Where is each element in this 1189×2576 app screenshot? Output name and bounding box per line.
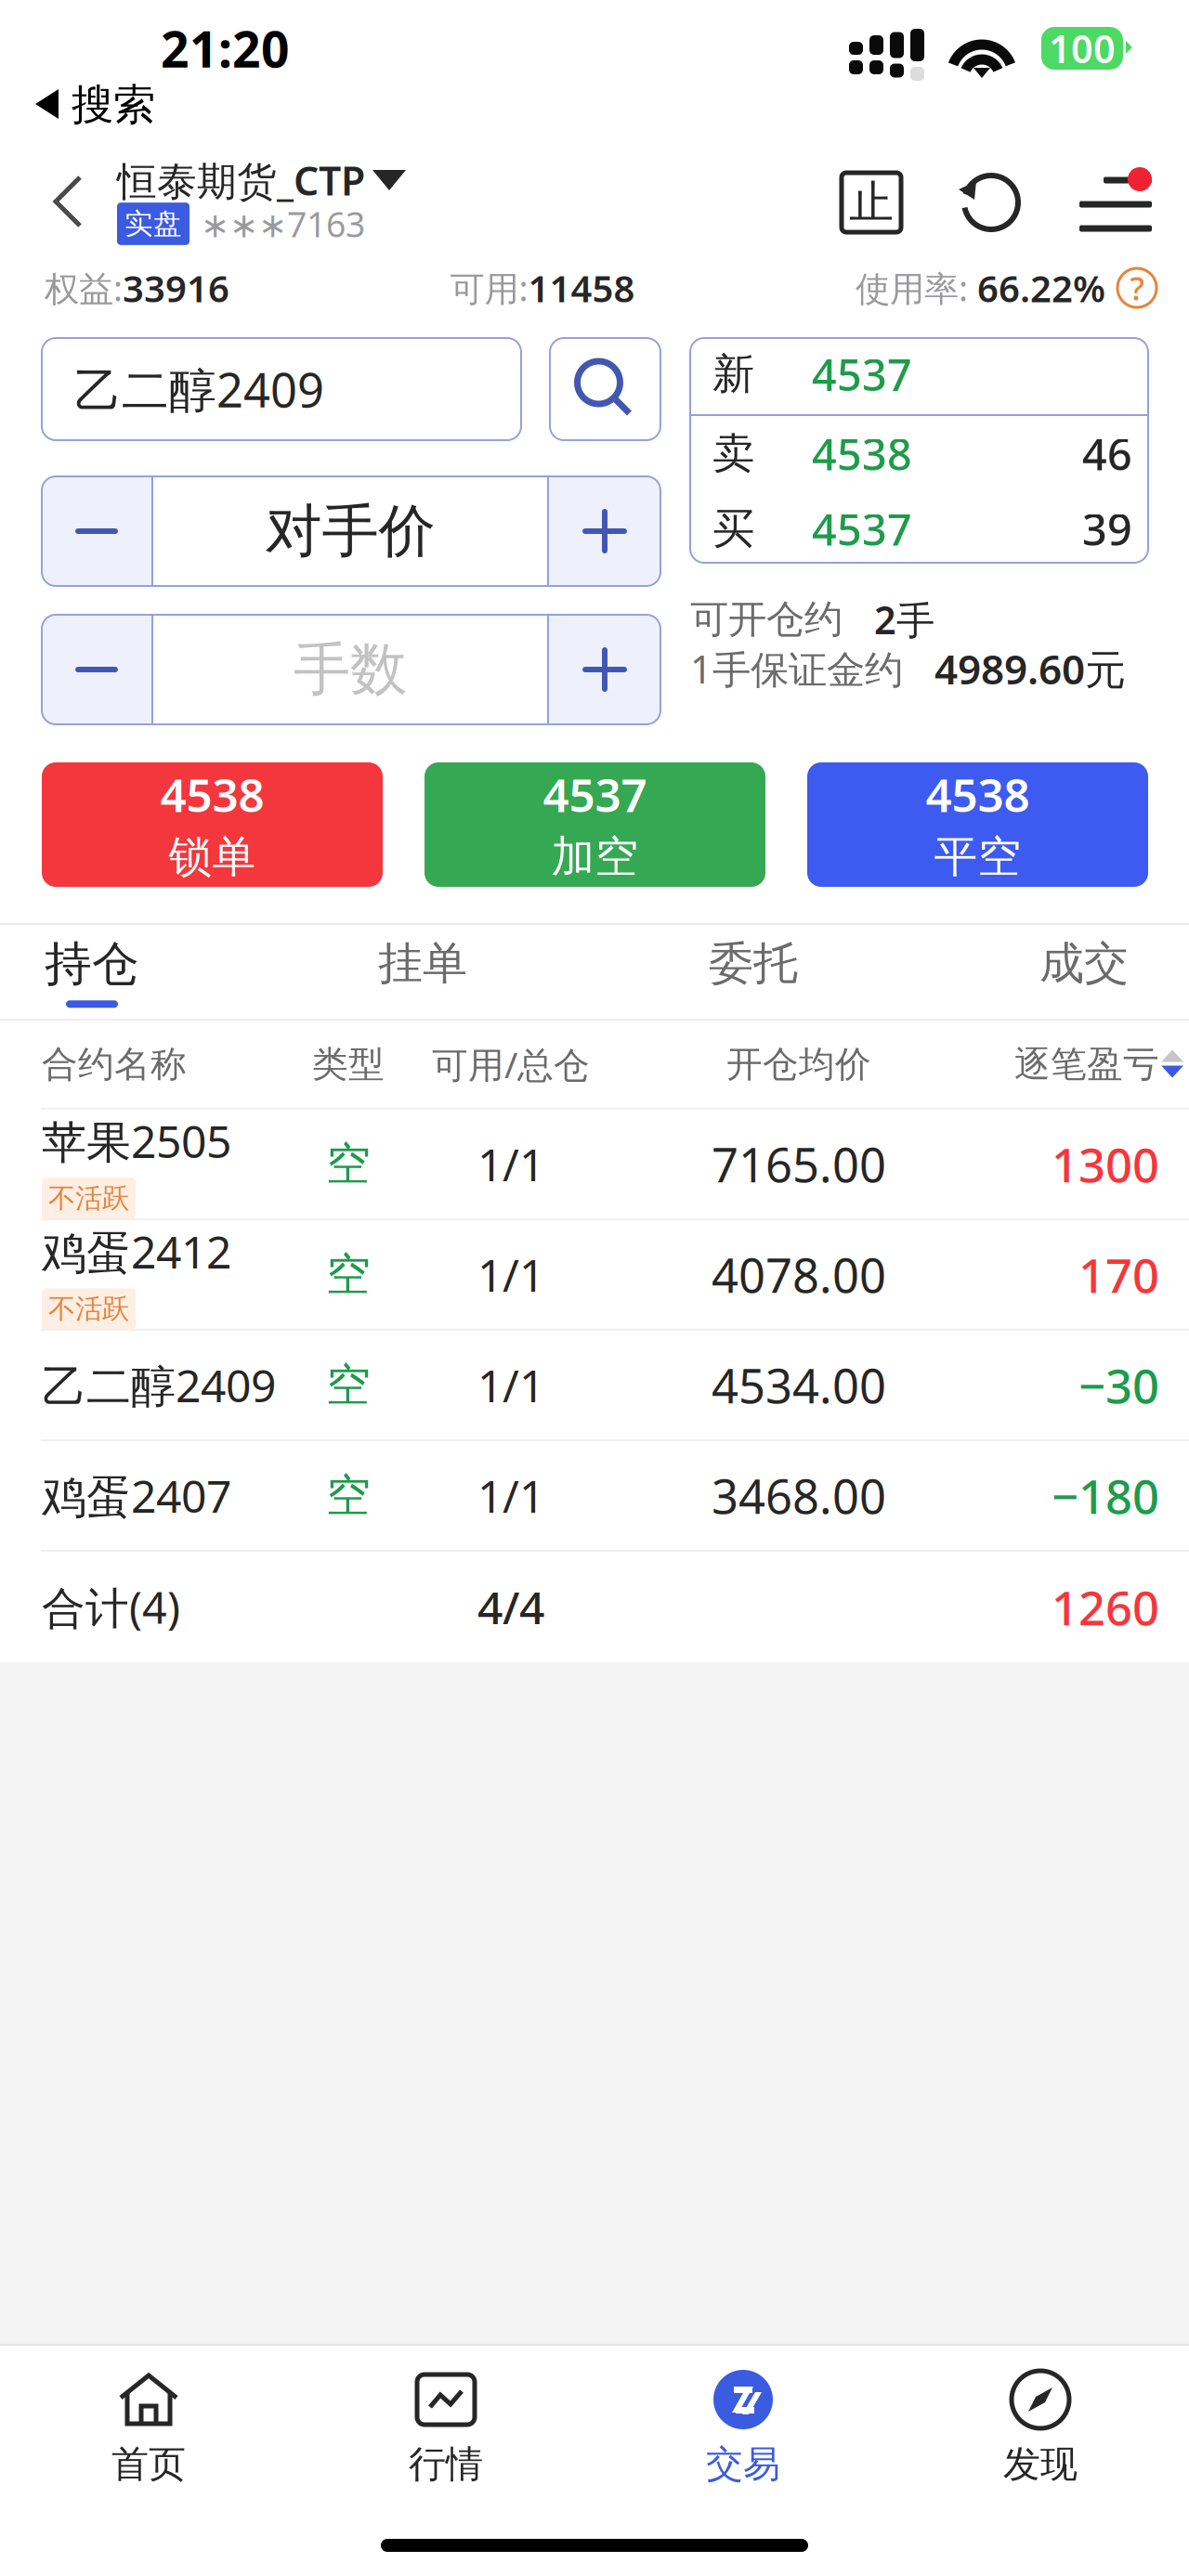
button[interactable]: 持仓 <box>41 925 143 1019</box>
button[interactable]: 苹果2505 <box>0 1110 1189 1218</box>
staticText: 7165.00 <box>712 1133 886 1195</box>
button[interactable]: 恒泰期货_CTP <box>117 156 478 204</box>
staticText: 鸡蛋2412 <box>42 1222 231 1281</box>
staticText: 类型 <box>312 1042 385 1086</box>
button[interactable]: 搜索 <box>0 82 1189 128</box>
staticText: 实盘 <box>124 206 182 241</box>
staticText: 合计(4) <box>42 1578 180 1636</box>
staticText: 不活跃 <box>48 1182 129 1215</box>
button[interactable]: 行情 <box>297 2346 594 2502</box>
staticText: 委托 <box>709 936 798 991</box>
staticText: 空 <box>326 1468 371 1523</box>
staticText: 挂单 <box>378 936 467 991</box>
button[interactable]: 乙二醇2409 <box>0 1331 1189 1439</box>
staticText: 4989.60元 <box>914 641 1126 696</box>
button[interactable]: 鸡蛋2412 <box>0 1220 1189 1329</box>
staticText: 空 <box>326 1137 371 1191</box>
staticText: −180 <box>1052 1464 1159 1527</box>
button[interactable]: 减 <box>42 615 151 724</box>
staticText: 锁单 <box>169 830 256 883</box>
staticText: 使用率: <box>856 265 977 311</box>
button[interactable]: 成交 <box>1033 925 1135 1019</box>
button[interactable]: 挂单 <box>372 925 474 1019</box>
button[interactable]: 4538 <box>807 762 1148 887</box>
staticText: ? <box>1130 267 1144 309</box>
button[interactable]: 4538 <box>42 762 383 887</box>
staticText: 手数 <box>294 635 407 704</box>
staticText: 4/4 <box>477 1577 544 1637</box>
staticText: 1/1 <box>477 1466 544 1525</box>
staticText: 4078.00 <box>712 1243 886 1306</box>
staticText: 乙二醇2409 <box>42 1355 276 1415</box>
staticText: 11458 <box>528 263 635 312</box>
staticText: 逐笔盈亏 <box>1014 1042 1159 1086</box>
staticText: 1260 <box>1052 1576 1159 1638</box>
staticText: 可用: <box>450 265 528 311</box>
staticText: 恒泰期货_CTP <box>117 154 365 207</box>
staticText: 持仓 <box>45 935 139 993</box>
staticText: 1300 <box>1052 1133 1159 1195</box>
staticText: 首页 <box>111 2441 186 2487</box>
button[interactable]: 加 <box>549 615 660 724</box>
staticText: 成交 <box>1039 936 1129 991</box>
staticText: 止 <box>849 175 894 230</box>
staticText: 不活跃 <box>48 1292 129 1326</box>
staticText: 33916 <box>123 263 229 312</box>
staticText: 170 <box>1078 1243 1159 1306</box>
staticText: −30 <box>1078 1354 1159 1416</box>
staticText: 平空 <box>934 830 1021 883</box>
staticText: 100 <box>1049 23 1116 74</box>
staticText: ∗∗∗7163 <box>201 201 365 247</box>
staticText: 买 <box>712 503 754 555</box>
staticText: 4537 <box>812 500 912 558</box>
button[interactable]: 4537 <box>425 762 765 887</box>
staticText: 对手价 <box>265 496 435 566</box>
staticText: 1手保证金约 <box>690 643 914 694</box>
staticText: 2手 <box>854 594 934 645</box>
button[interactable]: 刷新 <box>957 167 1026 238</box>
staticText: 1/1 <box>477 1355 544 1415</box>
button[interactable]: 止盈止损 <box>840 167 903 238</box>
button[interactable]: 返回 <box>0 150 117 254</box>
button[interactable]: 乙二醇2409 <box>42 338 521 440</box>
staticText: 39 <box>1082 500 1132 558</box>
staticText: 权益: <box>45 265 123 311</box>
staticText: 4538 <box>812 425 912 482</box>
staticText: 4534.00 <box>712 1354 886 1416</box>
staticText: 苹果2505 <box>42 1111 231 1170</box>
staticText: 合约名称 <box>42 1042 187 1086</box>
staticText: 鸡蛋2407 <box>42 1466 231 1525</box>
staticText: 乙二醇2409 <box>74 358 324 420</box>
button[interactable]: 委托 <box>702 925 804 1019</box>
staticText: 交易 <box>706 2441 780 2487</box>
staticText: 4538 <box>926 764 1030 825</box>
staticText: 66.22% <box>977 263 1105 312</box>
staticText: 4537 <box>543 764 647 825</box>
staticText: 空 <box>326 1247 371 1302</box>
staticText: 21:20 <box>161 15 290 81</box>
staticText: 1/1 <box>477 1245 544 1304</box>
button[interactable]: 鸡蛋2407 <box>0 1441 1189 1550</box>
staticText: 加空 <box>551 830 639 883</box>
staticText: 3468.00 <box>712 1464 886 1527</box>
button[interactable]: 菜单 <box>1079 167 1152 238</box>
staticText: 可用/总仓 <box>432 1040 590 1088</box>
staticText: 4537 <box>812 345 912 403</box>
staticText: 新 <box>712 348 754 400</box>
staticText: 开仓均价 <box>726 1042 871 1086</box>
staticText: 发现 <box>1003 2441 1078 2487</box>
staticText: 46 <box>1082 425 1132 482</box>
button[interactable]: 搜索 <box>550 338 660 440</box>
button[interactable]: 交易 <box>594 2346 892 2502</box>
staticText: 1/1 <box>477 1134 544 1194</box>
button[interactable]: 发现 <box>892 2346 1189 2502</box>
staticText: 空 <box>326 1358 371 1412</box>
staticText: 卖 <box>712 428 754 480</box>
staticText: 搜索 <box>72 79 155 131</box>
button[interactable]: 减 <box>42 476 151 586</box>
staticText: 可开仓约 <box>690 596 854 643</box>
staticText: 4538 <box>160 764 264 825</box>
button[interactable]: 首页 <box>0 2346 297 2502</box>
staticText: 行情 <box>409 2441 483 2487</box>
button[interactable]: 加 <box>549 476 660 586</box>
